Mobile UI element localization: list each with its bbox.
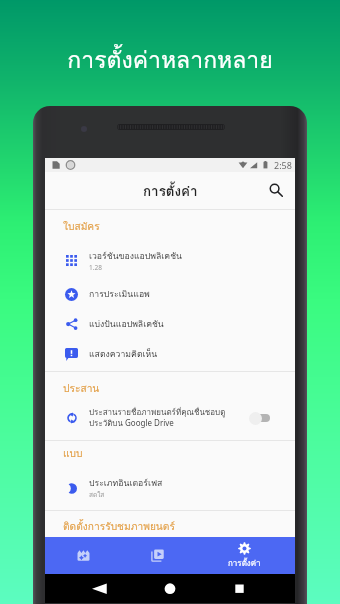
staticText: 2:58 (274, 159, 292, 171)
staticText: แสดงความคิดเห็น (89, 347, 158, 361)
staticText: ติดตั้งการรับชมภาพยนตร์ (63, 518, 175, 534)
button[interactable]: ประสานรายชื่อภาพยนตร์ที่คุณชื่นชอบดู ประ… (45, 399, 295, 436)
button[interactable]: แสดงความคิดเห็น (45, 339, 295, 369)
button[interactable]: Movies (45, 537, 122, 574)
staticText: ประเภทอินเตอร์เฟส (89, 476, 163, 490)
button[interactable]: Library (122, 537, 193, 574)
button[interactable]: การประเมินแอพ (45, 279, 295, 309)
staticText: 1.28 (89, 263, 102, 272)
staticText: สดใส (89, 490, 105, 500)
staticText: การตั้งค่า (143, 181, 198, 202)
staticText: ประสาน (63, 380, 100, 396)
button[interactable]: ประเภทอินเตอร์เฟส (45, 467, 295, 509)
staticText: ประสานรายชื่อภาพยนตร์ที่คุณชื่นชอบดู ประ… (89, 406, 226, 429)
staticText: ใบสมัคร (63, 218, 100, 234)
staticText: แบ่งปันแอปพลิเคชัน (89, 317, 164, 331)
staticText: การประเมินแอพ (89, 287, 150, 301)
staticText: เวอร์ชันของแอปพลิเคชัน (89, 249, 182, 263)
button[interactable]: การตั้งค่า (193, 537, 295, 574)
staticText: แบบ (63, 445, 83, 461)
staticText: การตั้งค่าหลากหลาย (0, 42, 340, 79)
staticText: การตั้งค่า (228, 557, 261, 570)
button[interactable]: เวอร์ชันของแอปพลิเคชัน (45, 239, 295, 281)
button[interactable]: แบ่งปันแอปพลิเคชัน (45, 309, 295, 339)
button[interactable]: Search (264, 178, 288, 202)
